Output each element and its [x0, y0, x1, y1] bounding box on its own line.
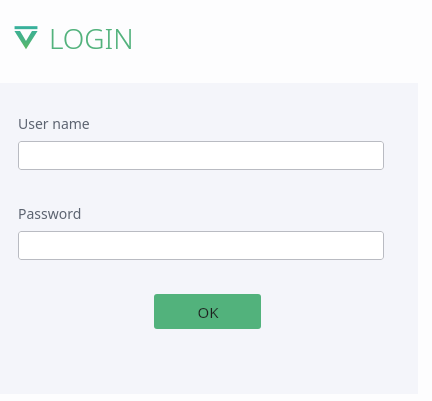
button[interactable]: Text input field [18, 231, 384, 260]
button[interactable]: Text input field [18, 141, 384, 170]
staticText: Password [18, 204, 82, 223]
button[interactable]: OK [154, 294, 261, 329]
staticText: OK [197, 302, 219, 322]
other: Vaadin logo [13, 25, 39, 51]
staticText: User name [18, 114, 90, 133]
staticText: LOGIN [49, 19, 134, 57]
